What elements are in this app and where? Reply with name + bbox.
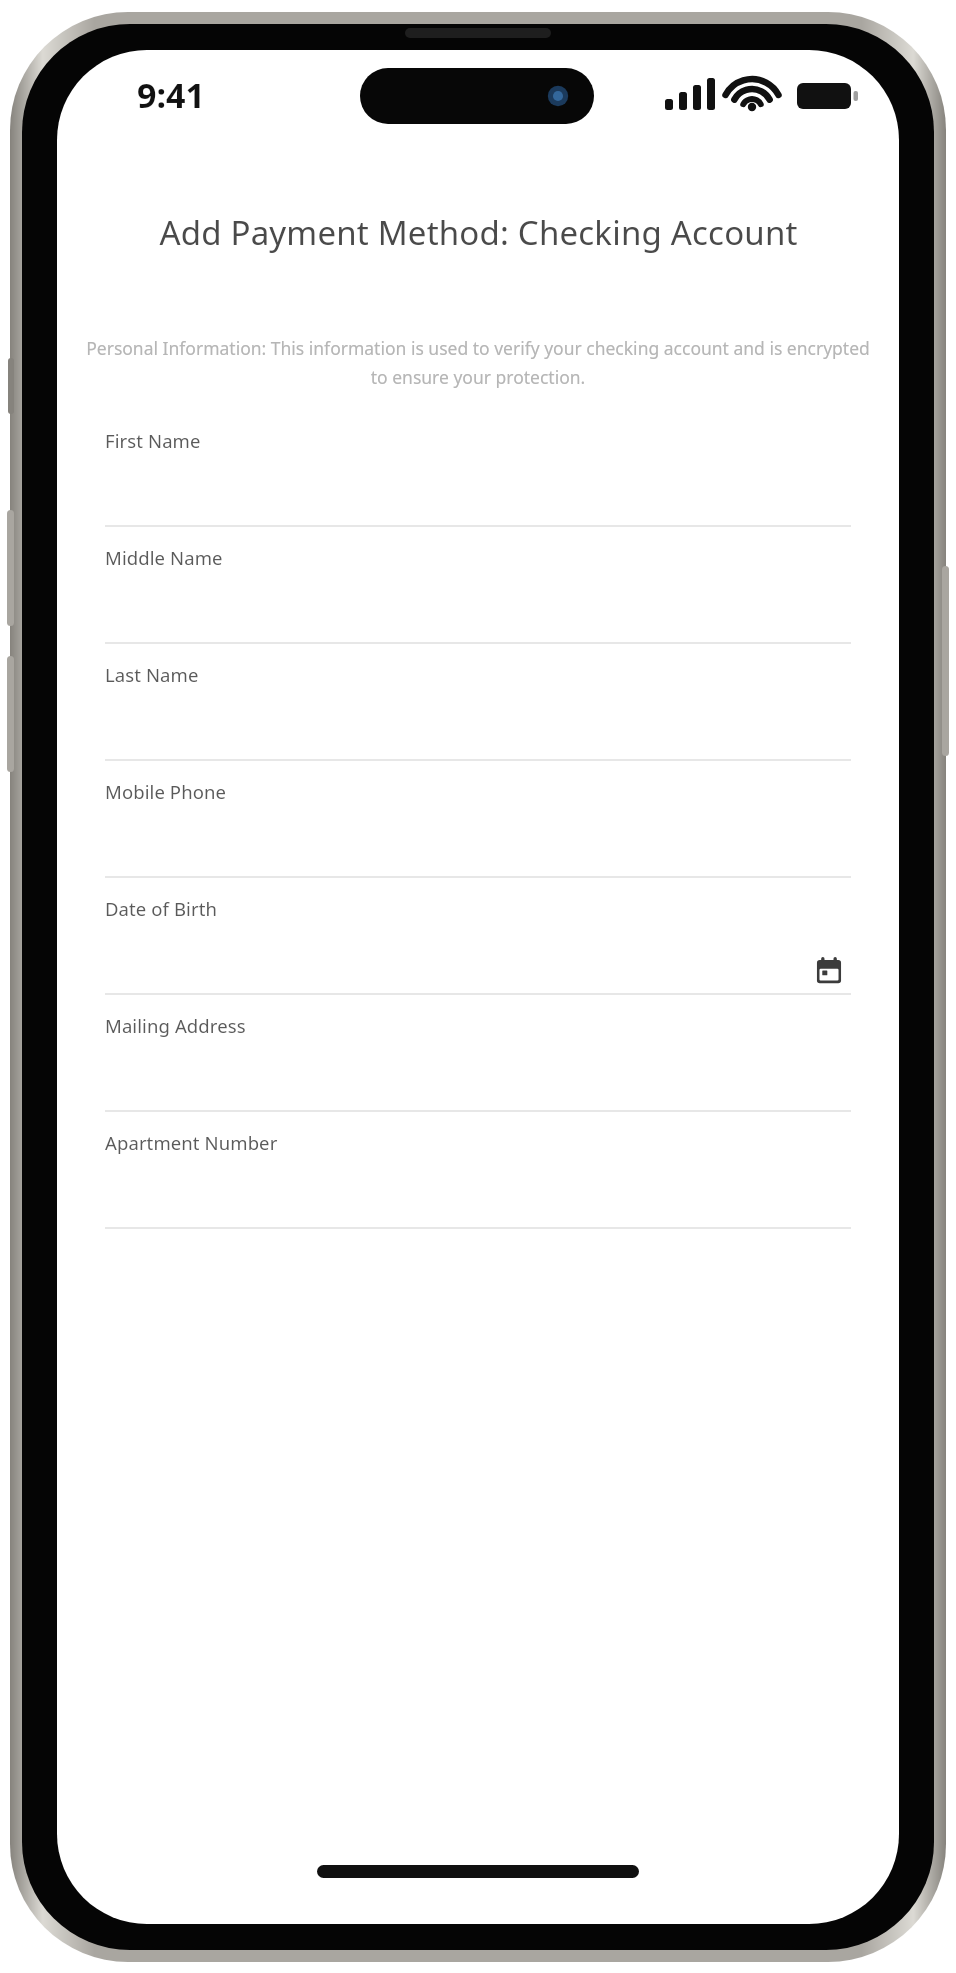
staticText: Last Name [105, 662, 199, 687]
staticText: Apartment Number [105, 1130, 278, 1155]
button[interactable]: Middle Name [105, 527, 851, 644]
staticText: Add Payment Method: Checking Account [159, 210, 798, 255]
button[interactable]: Date of Birth [105, 878, 851, 995]
staticText: 9:41 [137, 72, 205, 116]
button[interactable]: Last Name [105, 644, 851, 761]
staticText: Date of Birth [105, 896, 218, 921]
staticText: Personal Information: This information i… [79, 336, 877, 389]
button[interactable]: Mobile Phone [105, 761, 851, 878]
button[interactable]: First Name [105, 410, 851, 527]
staticText: Middle Name [105, 545, 223, 570]
staticText: Mailing Address [105, 1013, 246, 1038]
button[interactable]: Pick date [807, 949, 851, 993]
button[interactable]: Mailing Address [105, 995, 851, 1112]
button[interactable]: Apartment Number [105, 1112, 851, 1229]
staticText: First Name [105, 428, 201, 453]
staticText: Mobile Phone [105, 779, 227, 804]
